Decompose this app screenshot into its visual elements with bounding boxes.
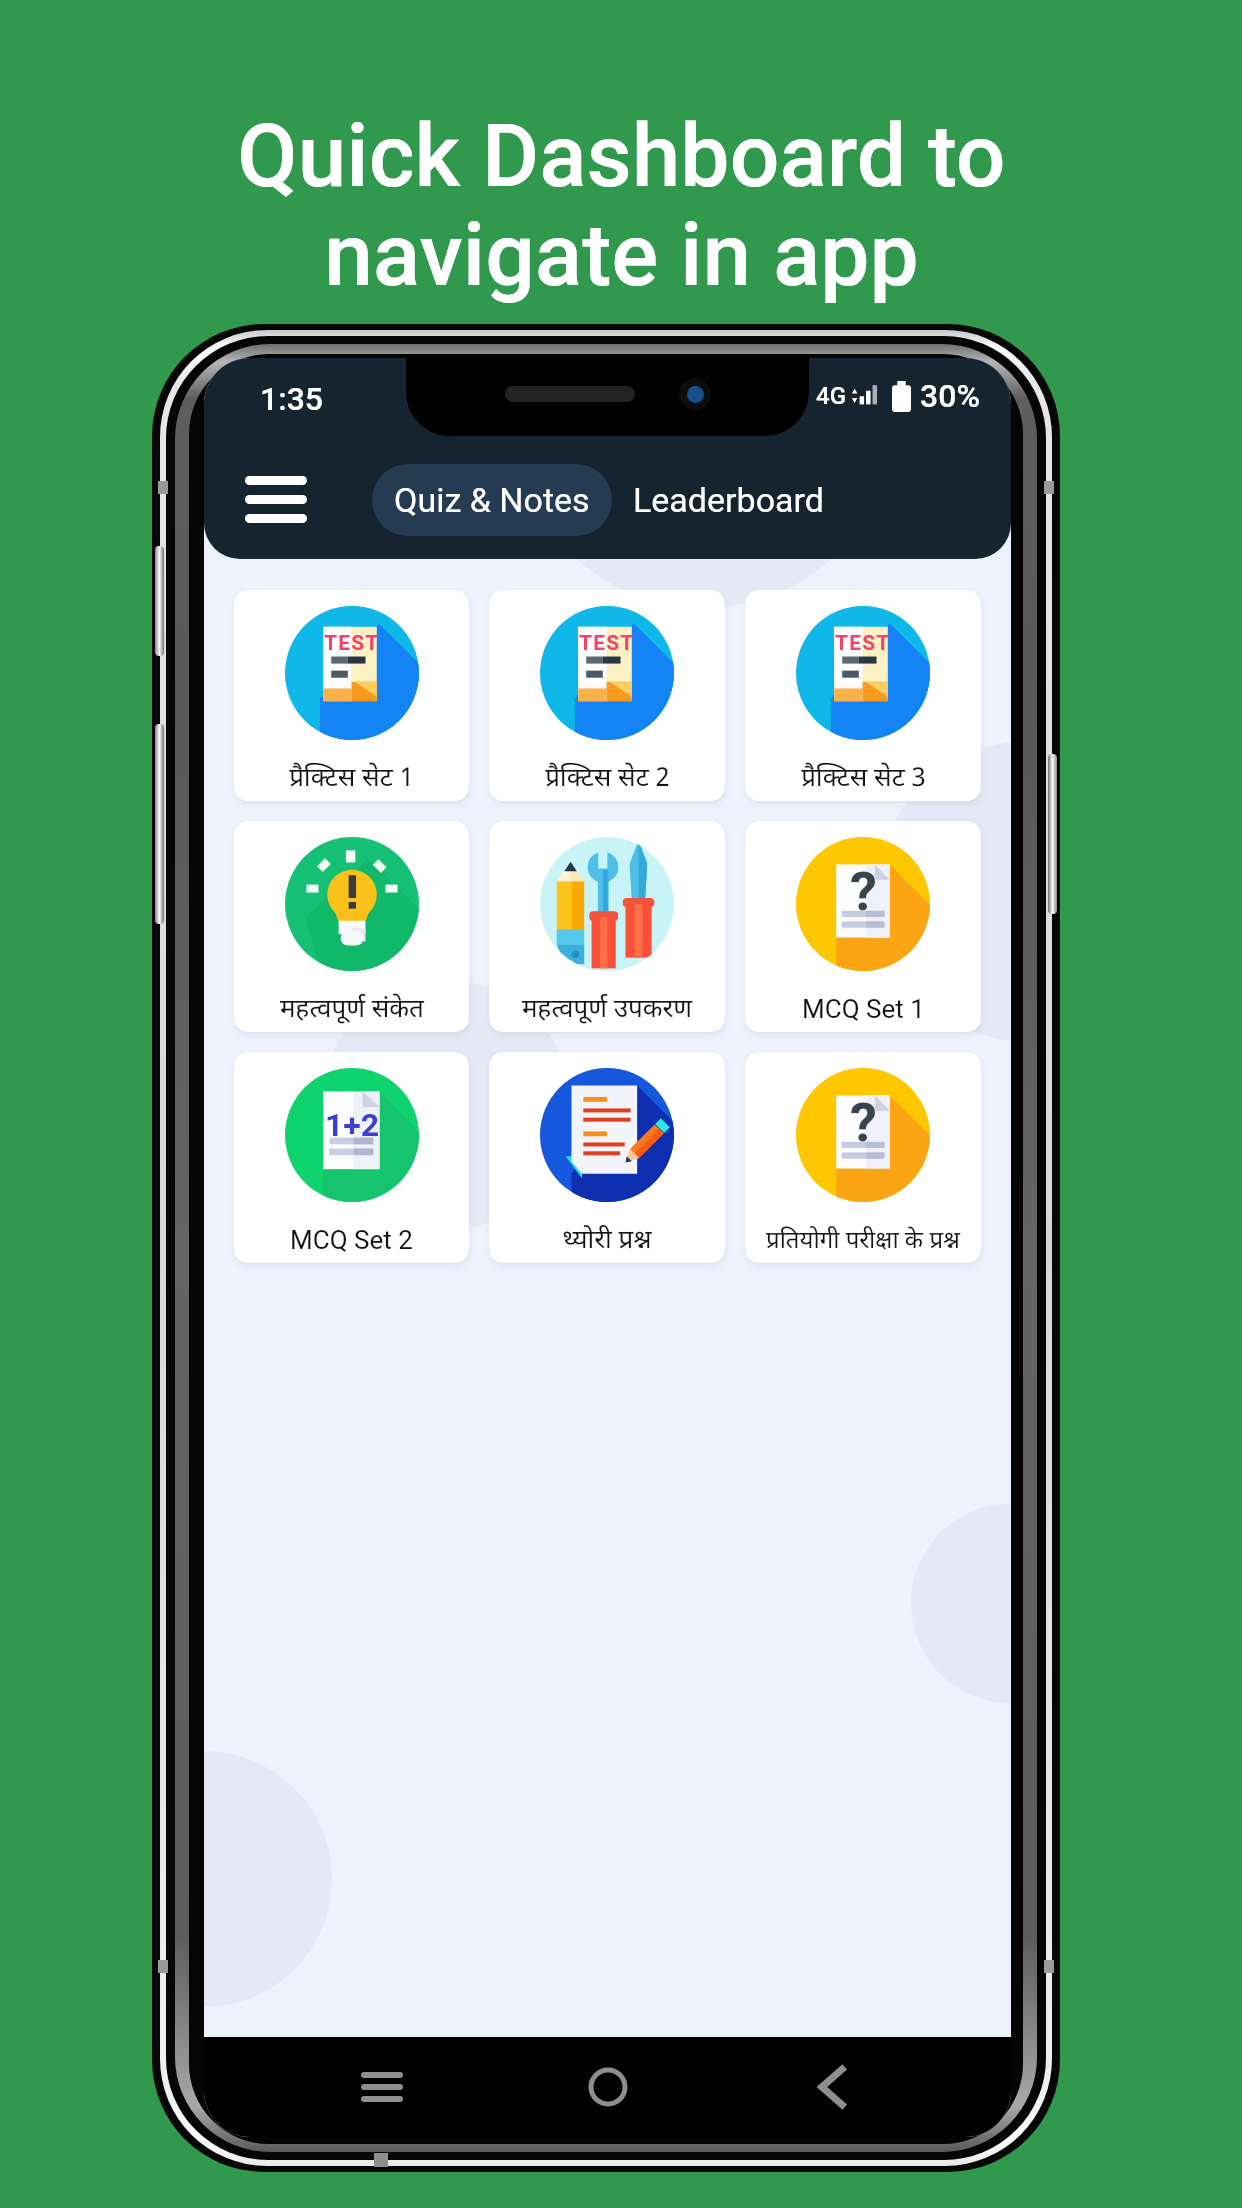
staticText: 1+2 <box>325 1106 380 1144</box>
staticText: TEST <box>835 631 891 656</box>
staticText: TEST <box>324 631 380 656</box>
staticText: महत्वपूर्ण संकेत <box>280 989 424 1024</box>
staticText: 30% <box>920 377 980 415</box>
button[interactable]: ? <box>745 1052 981 1263</box>
button[interactable]: ? <box>745 821 981 1032</box>
button[interactable]: थ्योरी प्रश्न <box>489 1052 725 1263</box>
button[interactable]: 1+2 <box>234 1052 469 1263</box>
staticText: Leaderboard <box>633 480 824 520</box>
button[interactable]: TEST <box>745 590 981 801</box>
staticText: महत्वपूर्ण उपकरण <box>522 989 692 1024</box>
staticText: 4G <box>816 382 846 410</box>
button[interactable]: Quiz & Notes <box>372 464 612 536</box>
button[interactable]: Back <box>785 2039 881 2135</box>
staticText: Quick Dashboard to navigate in app <box>237 105 1006 306</box>
staticText: थ्योरी प्रश्न <box>562 1220 652 1255</box>
button[interactable]: महत्वपूर्ण उपकरण <box>489 821 725 1032</box>
button[interactable]: TEST <box>489 590 725 801</box>
staticText: Quiz & Notes <box>394 480 590 520</box>
staticText: TEST <box>579 631 635 656</box>
staticText: ? <box>850 1091 877 1154</box>
staticText: MCQ Set 1 <box>802 994 925 1024</box>
staticText: प्रैक्टिस सेट 3 <box>801 758 926 793</box>
staticText: MCQ Set 2 <box>290 1225 413 1255</box>
button[interactable]: TEST <box>234 590 469 801</box>
button[interactable]: Leaderboard <box>624 464 832 536</box>
staticText: ? <box>850 860 877 923</box>
staticText: प्रैक्टिस सेट 1 <box>289 758 414 793</box>
staticText: 1:35 <box>260 380 324 418</box>
button[interactable]: महत्वपूर्ण संकेत <box>234 821 469 1032</box>
button[interactable]: Home <box>560 2039 656 2135</box>
button[interactable]: Recent apps <box>334 2039 430 2135</box>
button[interactable]: Open navigation menu <box>233 464 319 535</box>
staticText: प्रतियोगी परीक्षा के प्रश्न <box>766 1222 960 1255</box>
staticText: प्रैक्टिस सेट 2 <box>545 758 670 793</box>
